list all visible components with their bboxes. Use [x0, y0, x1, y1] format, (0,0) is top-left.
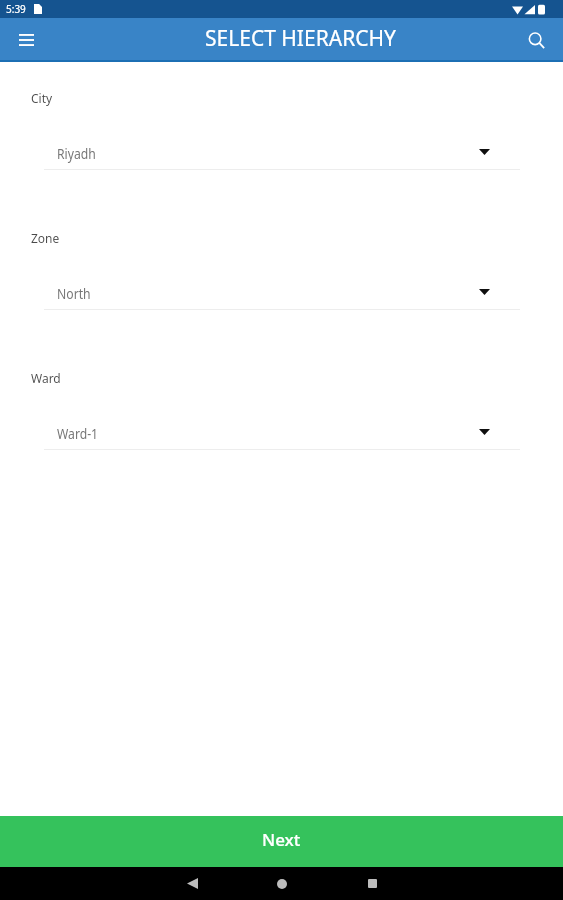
button[interactable]: Home: [259, 867, 305, 900]
staticText: Riyadh: [57, 144, 96, 163]
staticText: SELECT HIERARCHY: [205, 24, 396, 53]
button[interactable]: Back: [169, 867, 215, 900]
button[interactable]: North: [44, 270, 520, 310]
button[interactable]: Open navigation menu: [7, 21, 45, 59]
staticText: Ward: [31, 370, 61, 386]
staticText: City: [31, 90, 53, 106]
button[interactable]: Next: [0, 816, 563, 867]
staticText: North: [57, 284, 91, 303]
staticText: 5:39: [6, 2, 26, 16]
button[interactable]: Recent apps: [349, 867, 395, 900]
button[interactable]: Riyadh: [44, 130, 520, 170]
staticText: Next: [262, 828, 301, 851]
button[interactable]: Search: [517, 21, 555, 59]
button[interactable]: Ward-1: [44, 410, 520, 450]
staticText: Ward-1: [57, 424, 99, 443]
staticText: Zone: [31, 230, 60, 246]
